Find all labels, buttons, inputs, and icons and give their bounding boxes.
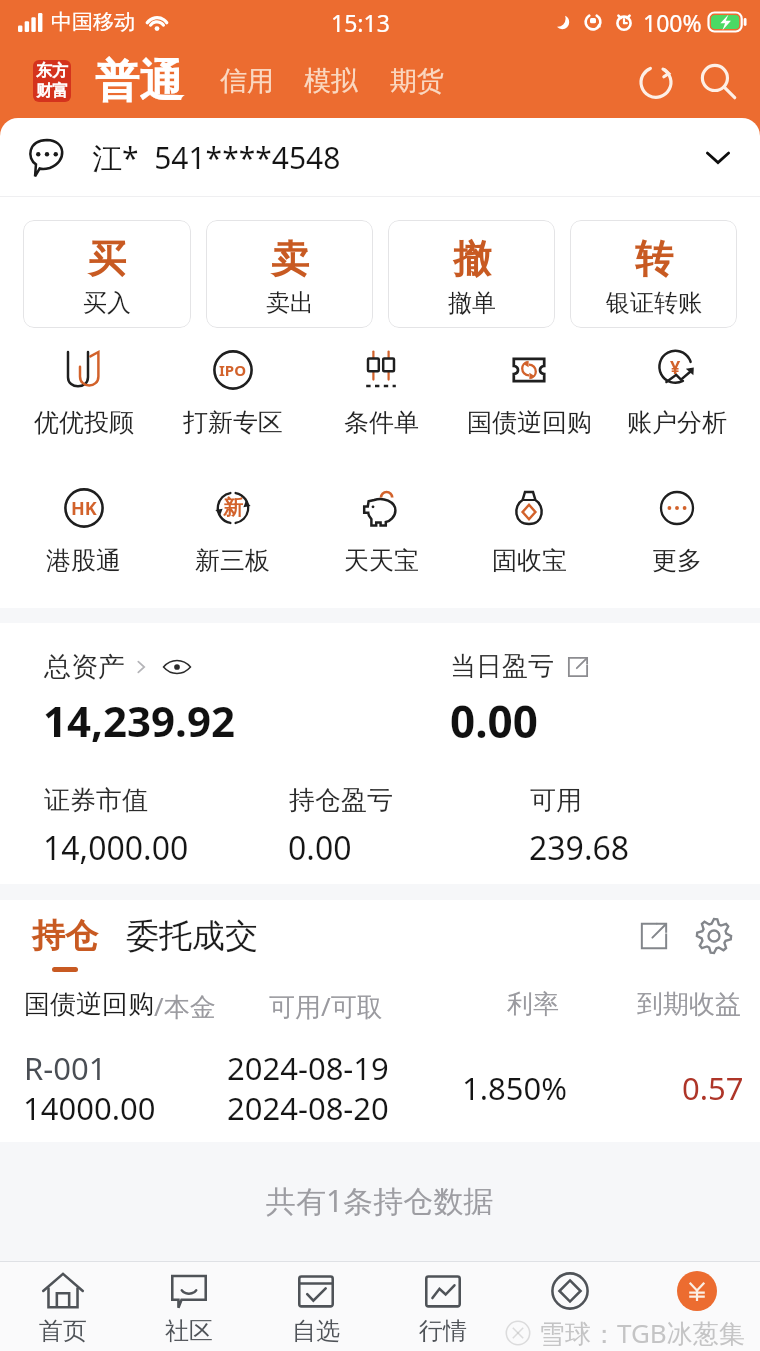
staticText: 2024-08-19 <box>227 1047 389 1089</box>
staticText: ¥ <box>670 355 681 380</box>
button[interactable]: Trade <box>633 1262 760 1351</box>
staticText: 总资产 <box>44 650 125 684</box>
button[interactable]: 普通 <box>95 54 183 109</box>
button[interactable]: 首页 <box>0 1262 126 1351</box>
staticText: 打新专区 <box>183 407 283 438</box>
button[interactable]: 江* 541****4548 <box>0 118 760 196</box>
button[interactable]: 持仓 <box>32 915 98 972</box>
staticText: 委托成交 <box>126 915 258 957</box>
button[interactable]: Open in new <box>630 912 678 960</box>
staticText: 中国移动 <box>51 9 135 35</box>
staticText: 0.00 <box>450 691 538 751</box>
button[interactable]: 自选 <box>252 1262 379 1351</box>
staticText: 买 <box>88 235 126 283</box>
staticText: 2024-08-20 <box>227 1087 389 1129</box>
staticText: 利率 <box>507 988 559 1021</box>
button[interactable]: 转 <box>570 220 737 328</box>
button[interactable]: 天天宝 <box>307 488 455 576</box>
button[interactable]: Refresh <box>628 53 684 109</box>
button[interactable]: Settings <box>690 912 738 960</box>
button[interactable]: 模拟 <box>304 64 358 98</box>
staticText: 撤单 <box>448 288 496 318</box>
staticText: 239.68 <box>529 826 630 870</box>
staticText: 可用 <box>530 784 582 817</box>
staticText: 首页 <box>39 1316 87 1346</box>
staticText: 模拟 <box>304 64 358 98</box>
staticText: 国债逆回购 <box>24 988 154 1021</box>
button[interactable]: 行情 <box>379 1262 506 1351</box>
staticText: 14000.00 <box>23 1087 156 1129</box>
staticText: 0.57 <box>682 1067 744 1109</box>
button[interactable]: 撤 <box>388 220 555 328</box>
staticText: 固收宝 <box>492 545 567 576</box>
button[interactable]: 国债逆回购 <box>455 350 603 438</box>
button[interactable]: 更多 <box>603 488 751 576</box>
staticText: 卖出 <box>266 288 314 318</box>
staticText: 1.850% <box>462 1067 567 1109</box>
button[interactable]: HK <box>9 488 158 576</box>
staticText: 账户分析 <box>627 407 727 438</box>
staticText: 行情 <box>419 1316 467 1346</box>
staticText: 撤 <box>453 235 491 283</box>
button[interactable]: Toggle visibility <box>161 655 193 679</box>
staticText: 买入 <box>83 288 131 318</box>
button[interactable]: 委托成交 <box>126 922 258 964</box>
button[interactable]: 优优投顾 <box>9 350 158 438</box>
staticText: 优优投顾 <box>34 407 134 438</box>
staticText: 天天宝 <box>344 545 419 576</box>
staticText: 银证转账 <box>606 288 702 318</box>
staticText: 更多 <box>652 545 702 576</box>
staticText: 东方 <box>36 61 68 81</box>
staticText: 持仓 <box>32 915 98 957</box>
staticText: 国债逆回购 <box>467 407 592 438</box>
button[interactable]: Expand <box>698 137 738 177</box>
button[interactable]: 期货 <box>390 64 444 98</box>
staticText: 当日盈亏 <box>450 650 554 683</box>
button[interactable]: 固收宝 <box>455 488 603 576</box>
staticText: 可用/可取 <box>269 988 383 1024</box>
staticText: 持仓盈亏 <box>289 784 393 817</box>
button[interactable]: R-001 <box>0 1041 760 1191</box>
staticText: 转 <box>635 235 673 283</box>
staticText: 社区 <box>165 1316 213 1346</box>
staticText: 条件单 <box>344 407 419 438</box>
button[interactable]: 新 <box>158 488 307 576</box>
button[interactable]: 总资产 <box>44 650 125 684</box>
staticText: 期货 <box>390 64 444 98</box>
button[interactable]: IPO <box>158 350 307 438</box>
button[interactable]: 信用 <box>220 64 274 98</box>
staticText: 0.00 <box>288 826 352 870</box>
staticText: 普通 <box>95 54 183 109</box>
button[interactable]: 买 <box>23 220 191 328</box>
staticText: 卖 <box>271 235 309 283</box>
staticText: 14,000.00 <box>43 826 189 870</box>
button[interactable]: Discover <box>506 1262 633 1351</box>
button[interactable]: 条件单 <box>307 350 455 438</box>
button[interactable]: ¥ <box>603 350 751 438</box>
staticText: 新三板 <box>195 545 270 576</box>
staticText: 证券市值 <box>44 784 148 817</box>
staticText: 港股通 <box>46 545 121 576</box>
staticText: 100% <box>643 7 702 38</box>
staticText: 信用 <box>220 64 274 98</box>
button[interactable]: 社区 <box>126 1262 252 1351</box>
button[interactable]: 卖 <box>206 220 373 328</box>
staticText: 共有1条持仓数据 <box>266 1180 494 1221</box>
button[interactable]: Search <box>690 53 746 109</box>
staticText: /本金 <box>154 988 216 1024</box>
button[interactable]: 当日盈亏 <box>450 650 554 683</box>
staticText: 自选 <box>292 1316 340 1346</box>
staticText: 江* 541****4548 <box>92 137 341 178</box>
staticText: 财富 <box>36 81 68 101</box>
staticText: 14,239.92 <box>43 692 235 749</box>
staticText: 到期收益 <box>637 988 741 1021</box>
staticText: HK <box>71 496 97 521</box>
staticText: IPO <box>219 360 247 380</box>
staticText: R-001 <box>24 1047 107 1089</box>
staticText: 雪球：TGB冰葱集 <box>539 1315 745 1351</box>
staticText: 新 <box>223 495 243 520</box>
staticText: 15:13 <box>331 7 390 38</box>
